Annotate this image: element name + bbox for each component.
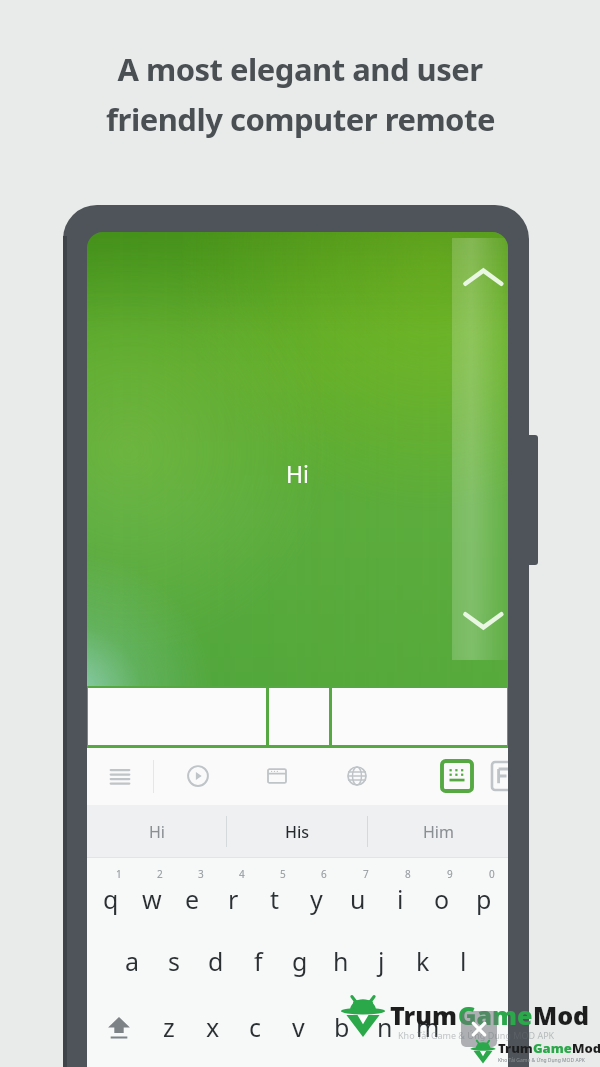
staticText: 7 xyxy=(363,867,369,881)
button[interactable]: h xyxy=(320,928,361,994)
staticText: 9 xyxy=(447,867,453,881)
staticText: 0 xyxy=(489,867,495,881)
staticText: n xyxy=(377,1010,393,1044)
button[interactable]: j xyxy=(361,928,402,994)
button[interactable]: x xyxy=(191,994,234,1060)
staticText: k xyxy=(416,944,430,978)
staticText: o xyxy=(434,882,450,916)
button[interactable]: Menu xyxy=(98,754,142,798)
button[interactable]: b xyxy=(320,994,363,1060)
staticText: Hi xyxy=(149,821,165,843)
button[interactable]: 6 xyxy=(295,858,337,928)
button[interactable]: k xyxy=(402,928,443,994)
button[interactable]: d xyxy=(195,928,237,994)
button[interactable]: Windows xyxy=(255,754,299,798)
staticText: His xyxy=(285,821,310,843)
staticText: b xyxy=(334,1010,350,1044)
staticText: 6 xyxy=(321,867,327,881)
staticText: 5 xyxy=(280,867,286,881)
button[interactable]: 9 xyxy=(421,858,463,928)
staticText: y xyxy=(310,882,323,916)
staticText: Hi xyxy=(286,458,309,489)
staticText: Him xyxy=(423,821,454,843)
staticText: d xyxy=(208,944,224,978)
button[interactable]: Shift xyxy=(90,994,147,1060)
staticText: u xyxy=(350,882,366,916)
button[interactable]: Media xyxy=(176,754,220,798)
staticText: Mod xyxy=(533,998,590,1032)
button[interactable]: Him xyxy=(368,805,508,858)
button[interactable]: 5 xyxy=(254,858,295,928)
staticText: r xyxy=(228,882,239,916)
staticText: Game xyxy=(458,998,533,1032)
staticText: Kho Tải Game & Ứng Dụng MOD APK xyxy=(398,1029,555,1041)
staticText: Trum xyxy=(498,1039,533,1057)
staticText: e xyxy=(185,882,200,916)
button[interactable]: 0 xyxy=(463,858,505,928)
button[interactable]: l xyxy=(443,928,484,994)
button[interactable]: Close xyxy=(461,1011,497,1047)
staticText: f xyxy=(254,944,263,978)
staticText: q xyxy=(103,882,119,916)
staticText: Kho Tải Game & Ứng Dụng MOD APK xyxy=(498,1057,585,1064)
staticText: Trum xyxy=(390,998,458,1032)
button[interactable]: a xyxy=(111,928,153,994)
staticText: friendly computer remote xyxy=(106,98,495,140)
button[interactable]: Keyboard xyxy=(435,754,479,798)
staticText: m xyxy=(416,1010,440,1044)
staticText: 1 xyxy=(116,867,122,881)
staticText: c xyxy=(249,1010,262,1044)
staticText: 8 xyxy=(405,867,411,881)
button[interactable]: 8 xyxy=(379,858,421,928)
button[interactable]: Browser xyxy=(335,754,379,798)
staticText: h xyxy=(333,944,349,978)
staticText: 2 xyxy=(157,867,163,881)
button[interactable]: s xyxy=(153,928,195,994)
staticText: A most elegant and user xyxy=(117,48,483,90)
staticText: v xyxy=(292,1010,305,1044)
button[interactable]: 4 xyxy=(213,858,254,928)
staticText: i xyxy=(397,882,404,916)
staticText: 3 xyxy=(198,867,204,881)
button[interactable]: v xyxy=(277,994,320,1060)
staticText: z xyxy=(163,1010,175,1044)
button[interactable]: 1 xyxy=(90,858,131,928)
staticText: x xyxy=(206,1010,220,1044)
button[interactable]: 2 xyxy=(131,858,172,928)
staticText: w xyxy=(142,882,162,916)
button[interactable]: 7 xyxy=(337,858,379,928)
staticText: p xyxy=(476,882,492,916)
button[interactable]: c xyxy=(234,994,277,1060)
staticText: 4 xyxy=(239,867,245,881)
staticText: l xyxy=(460,944,467,978)
button[interactable]: g xyxy=(279,928,320,994)
button[interactable]: His xyxy=(227,805,367,858)
staticText: Mod xyxy=(572,1039,600,1057)
button[interactable]: z xyxy=(147,994,191,1060)
button[interactable]: n xyxy=(363,994,406,1060)
button[interactable]: Scroll xyxy=(452,238,508,660)
button[interactable]: f xyxy=(237,928,279,994)
button[interactable]: More xyxy=(492,762,508,790)
staticText: Game xyxy=(533,1039,572,1057)
button[interactable]: Scroll xyxy=(87,232,508,686)
staticText: j xyxy=(378,944,385,978)
button[interactable]: Hi xyxy=(87,805,226,858)
staticText: g xyxy=(292,944,308,978)
button[interactable]: m xyxy=(406,994,449,1060)
staticText: t xyxy=(270,882,280,916)
staticText: s xyxy=(168,944,180,978)
button[interactable]: 3 xyxy=(172,858,213,928)
staticText: a xyxy=(125,944,140,978)
